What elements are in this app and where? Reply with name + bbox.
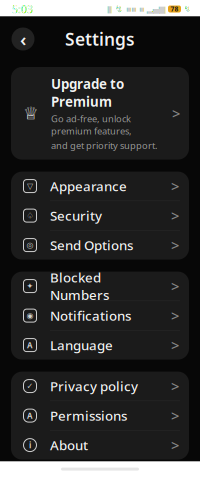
staticText: ✓	[26, 382, 33, 391]
staticText: ↯	[115, 4, 123, 14]
staticText: About	[50, 436, 88, 454]
staticText: Security	[50, 207, 102, 224]
button[interactable]: ◉	[11, 301, 189, 330]
staticText: ↯	[184, 4, 191, 14]
staticText: >	[171, 406, 179, 425]
button[interactable]: A	[11, 401, 189, 430]
staticText: Language	[50, 336, 113, 354]
staticText: Notifications	[50, 307, 131, 324]
staticText: Blocked Numbers	[50, 268, 109, 304]
staticText: Privacy policy	[50, 377, 138, 395]
button[interactable]: A	[11, 331, 189, 360]
staticText: >	[171, 176, 179, 196]
staticText: Permissions	[50, 407, 127, 424]
staticText: Upgrade to Premium	[51, 75, 124, 110]
button[interactable]: ▽	[11, 172, 189, 201]
staticText: A	[27, 410, 33, 421]
button[interactable]: ✓	[11, 372, 189, 401]
staticText: and get priority support.	[51, 139, 158, 152]
staticText: ♤	[26, 211, 33, 220]
staticText: Go ad-free, unlock premium features,	[51, 112, 132, 137]
staticText: >	[171, 235, 179, 255]
staticText: ▮	[107, 4, 112, 14]
staticText: >	[171, 276, 179, 296]
staticText: ‹	[20, 27, 26, 51]
button[interactable]: ♕	[11, 67, 189, 160]
staticText: ▪	[139, 4, 144, 14]
staticText: >	[171, 376, 179, 396]
staticText: >	[172, 104, 180, 123]
staticText: 78	[170, 5, 178, 13]
staticText: >	[171, 306, 179, 325]
staticText: i	[29, 440, 31, 450]
button[interactable]: Back	[8, 24, 38, 54]
staticText: Settings	[65, 27, 135, 50]
staticText: ▽	[27, 182, 33, 191]
staticText: ♕	[23, 103, 39, 123]
staticText: >	[171, 335, 179, 355]
staticText: ◎	[26, 241, 33, 250]
staticText: Send Options	[50, 236, 133, 254]
button[interactable]: ✦	[11, 272, 189, 301]
button[interactable]: ♤	[11, 201, 189, 230]
staticText: ▂▄▆	[147, 4, 165, 14]
button[interactable]: i	[11, 431, 189, 460]
staticText: Appearance	[50, 177, 127, 195]
staticText: ◉	[26, 311, 33, 320]
staticText: ▪▪	[126, 4, 136, 14]
button[interactable]: ◎	[11, 231, 189, 260]
staticText: A	[27, 340, 33, 350]
staticText: >	[171, 206, 179, 225]
staticText: >	[171, 435, 179, 455]
staticText: ✦	[26, 282, 33, 291]
staticText: 5:03	[12, 2, 33, 16]
